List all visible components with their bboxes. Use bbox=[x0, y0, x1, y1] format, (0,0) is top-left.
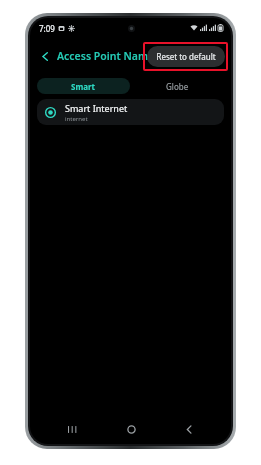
button[interactable]: Smart bbox=[37, 78, 130, 94]
button[interactable]: Reset to default bbox=[147, 46, 225, 67]
button[interactable]: Home bbox=[114, 414, 148, 444]
button[interactable]: Globe bbox=[130, 78, 224, 94]
staticText: Globe bbox=[166, 81, 189, 92]
staticText: 7:09 bbox=[39, 23, 55, 34]
button[interactable]: Recent apps bbox=[55, 414, 89, 444]
button[interactable]: Back bbox=[35, 46, 55, 66]
staticText: Access Point Names bbox=[57, 49, 160, 63]
staticText: internet bbox=[65, 115, 88, 123]
staticText: Reset to default bbox=[156, 51, 216, 62]
button[interactable]: Smart Internet bbox=[37, 99, 224, 125]
staticText: Smart Internet bbox=[65, 102, 128, 114]
staticText: Smart bbox=[71, 81, 96, 92]
button[interactable]: Back bbox=[172, 414, 206, 444]
